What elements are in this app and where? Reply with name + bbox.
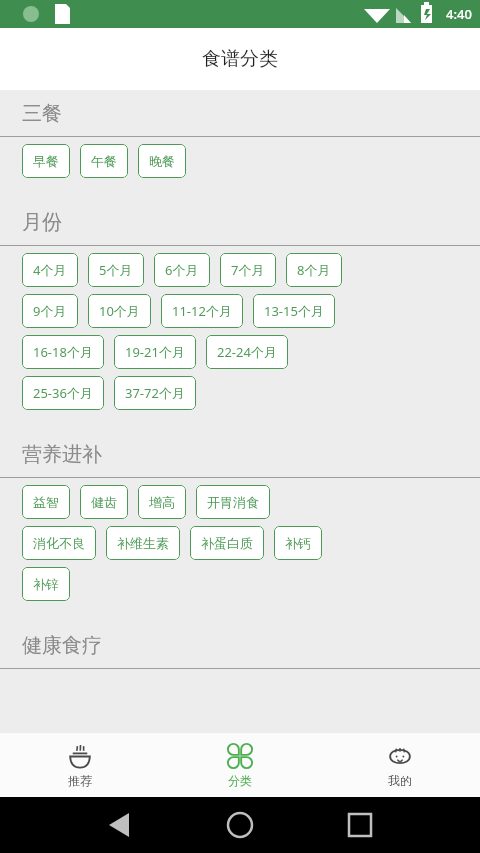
staticText: 食谱分类 xyxy=(202,47,278,71)
staticText: 7个月 xyxy=(231,261,265,279)
button[interactable]: 7个月 xyxy=(220,253,276,287)
staticText: 19-21个月 xyxy=(125,343,185,361)
staticText: 我的 xyxy=(388,773,412,788)
staticText: 22-24个月 xyxy=(217,343,277,361)
button[interactable]: 13-15个月 xyxy=(253,294,335,328)
staticText: 开胃消食 xyxy=(207,494,259,510)
button[interactable]: 8个月 xyxy=(286,253,342,287)
button[interactable]: 4个月 xyxy=(22,253,78,287)
staticText: 11-12个月 xyxy=(172,302,232,320)
other: 我的 xyxy=(387,743,413,769)
staticText: 月份 xyxy=(22,210,62,235)
staticText: 9个月 xyxy=(33,302,67,320)
button[interactable]: 9个月 xyxy=(22,294,78,328)
staticText: 13-15个月 xyxy=(264,302,324,320)
button[interactable]: 我的 xyxy=(320,733,480,797)
staticText: 晚餐 xyxy=(149,153,175,169)
button[interactable]: 午餐 xyxy=(80,144,128,178)
staticText: 10个月 xyxy=(99,302,140,320)
staticText: 16-18个月 xyxy=(33,343,93,361)
staticText: 增高 xyxy=(149,494,175,510)
button[interactable]: 19-21个月 xyxy=(114,335,196,369)
staticText: 5个月 xyxy=(99,261,133,279)
button[interactable]: 推荐 xyxy=(0,733,160,797)
button[interactable]: 开胃消食 xyxy=(196,485,270,519)
other: 分类 xyxy=(227,743,253,769)
staticText: 4个月 xyxy=(33,261,67,279)
staticText: 补维生素 xyxy=(117,535,169,551)
button[interactable]: 补钙 xyxy=(274,526,322,560)
button[interactable]: 补维生素 xyxy=(106,526,180,560)
button[interactable]: 补蛋白质 xyxy=(190,526,264,560)
staticText: 三餐 xyxy=(22,101,62,126)
staticText: 消化不良 xyxy=(33,535,85,551)
button[interactable]: 增高 xyxy=(138,485,186,519)
button[interactable]: 益智 xyxy=(22,485,70,519)
button[interactable]: 补锌 xyxy=(22,567,70,601)
button[interactable]: 晚餐 xyxy=(138,144,186,178)
staticText: 补锌 xyxy=(33,576,59,592)
other: 推荐 xyxy=(67,743,93,769)
staticText: 37-72个月 xyxy=(125,384,185,402)
button[interactable]: 10个月 xyxy=(88,294,151,328)
button[interactable]: 16-18个月 xyxy=(22,335,104,369)
button[interactable]: 消化不良 xyxy=(22,526,96,560)
button[interactable]: 5个月 xyxy=(88,253,144,287)
staticText: 4:40 xyxy=(446,5,472,23)
button[interactable]: 分类 xyxy=(160,733,320,797)
button[interactable]: 22-24个月 xyxy=(206,335,288,369)
staticText: 25-36个月 xyxy=(33,384,93,402)
staticText: 分类 xyxy=(228,773,252,788)
staticText: 补钙 xyxy=(285,535,311,551)
staticText: 益智 xyxy=(33,494,59,510)
staticText: 8个月 xyxy=(297,261,331,279)
staticText: 推荐 xyxy=(68,773,92,788)
button[interactable]: 6个月 xyxy=(154,253,210,287)
staticText: 健齿 xyxy=(91,494,117,510)
staticText: 营养进补 xyxy=(22,442,102,467)
staticText: 午餐 xyxy=(91,153,117,169)
button[interactable]: 37-72个月 xyxy=(114,376,196,410)
button[interactable]: 早餐 xyxy=(22,144,70,178)
staticText: 补蛋白质 xyxy=(201,535,253,551)
button[interactable]: 25-36个月 xyxy=(22,376,104,410)
button[interactable]: 健齿 xyxy=(80,485,128,519)
button[interactable]: 11-12个月 xyxy=(161,294,243,328)
staticText: 早餐 xyxy=(33,153,59,169)
staticText: 健康食疗 xyxy=(22,633,102,658)
staticText: 6个月 xyxy=(165,261,199,279)
